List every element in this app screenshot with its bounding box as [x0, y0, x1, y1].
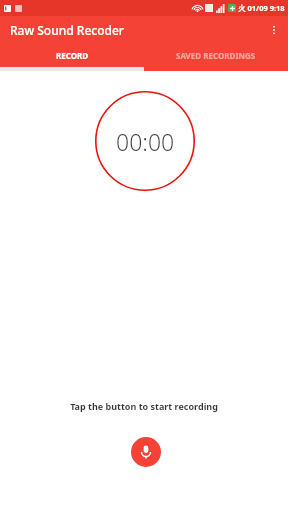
staticText: RECORD [56, 50, 89, 61]
staticText: Tap the button to start recording [70, 400, 218, 412]
button[interactable]: SAVED RECORDINGS [144, 44, 288, 67]
button[interactable]: More options [260, 16, 288, 44]
staticText: 火 01/09 9:18 [238, 3, 285, 13]
button[interactable]: Start recording [131, 437, 161, 467]
staticText: SAVED RECORDINGS [176, 50, 256, 61]
button[interactable]: RECORD [0, 44, 144, 67]
staticText: Raw Sound Recoder [10, 22, 124, 38]
staticText: 00:00 [116, 126, 175, 157]
